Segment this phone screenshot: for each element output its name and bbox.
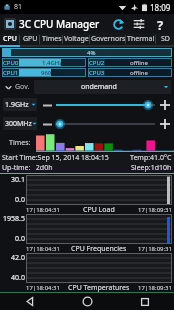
staticText: Voltage [64,34,89,44]
staticText: 17|18:09:31 [138,245,172,253]
button[interactable]: 300MHz [3,117,37,130]
button[interactable]: CPU1 [2,68,86,77]
button[interactable]: Frequency slider [56,116,155,132]
staticText: 4% [87,49,96,57]
staticText: 1.9GHz [5,100,29,110]
button[interactable] [26,214,172,244]
staticText: 42.0 [11,253,25,263]
staticText: Times: [9,138,31,148]
button[interactable]: CPU3 [88,68,172,77]
staticText: Temp:41.0°C [130,153,172,163]
staticText: 0.0 [15,195,25,205]
staticText: CPU3 [89,69,105,77]
button[interactable]: GPU [20,33,40,45]
staticText: 0.0 [15,234,25,244]
button[interactable] [26,175,172,205]
staticText: ? [157,16,164,32]
staticText: Gov. [15,82,30,92]
button[interactable]: Decrease [41,118,53,130]
staticText: SD [161,34,170,44]
staticText: Start Time:Sep 15, 2014 18:04:15 [2,153,109,163]
button[interactable]: Help [152,16,168,32]
staticText: 17|18:04:31 [26,284,60,292]
button[interactable] [36,133,174,153]
staticText: GPU [23,34,38,44]
staticText: CPU1 [3,69,19,77]
staticText: Governors [91,34,126,44]
staticText: CPU0 [3,59,19,67]
button[interactable]: Frequency slider [56,97,155,113]
button[interactable]: Refresh [110,16,126,32]
staticText: 40.0 [11,273,25,283]
button[interactable]: Thermal [126,33,156,45]
button[interactable]: Back [0,293,58,310]
button[interactable]: Increase [158,98,171,111]
button[interactable] [26,253,172,283]
staticText: offline [130,59,148,67]
staticText: 17|18:09:31 [138,284,172,292]
staticText: CPU Load [83,205,115,214]
button[interactable]: Governors [90,33,126,45]
button[interactable]: Decrease [41,99,53,111]
staticText: Times [42,34,62,44]
button[interactable]: CPU0 [2,58,86,67]
staticText: 17|18:04:31 [26,245,60,253]
staticText: offline [130,69,148,77]
staticText: Thermal [127,34,155,44]
staticText: Up-time: 2d0h [2,163,53,173]
staticText: 300MHz [5,119,32,129]
button[interactable]: Home [58,293,116,310]
button[interactable]: Increase [158,117,171,130]
staticText: 18:09 [150,2,171,13]
staticText: CPU Temperatures [68,283,130,292]
staticText: ondemand [81,82,117,92]
button[interactable]: Settings [131,16,147,32]
staticText: 960MHz [41,69,65,77]
button[interactable]: 1.9GHz [3,98,37,111]
staticText: 3C CPU Manager [19,17,100,31]
button[interactable]: Recents [116,293,174,310]
staticText: 1958.5 [3,214,25,224]
staticText: 17|18:09:31 [138,206,172,214]
staticText: 81 [14,2,23,12]
staticText: 30.1 [11,175,25,185]
button[interactable]: SD [156,33,174,45]
button[interactable]: CPU [0,33,20,45]
staticText: CPU [3,34,17,44]
button[interactable]: Times [40,33,63,45]
button[interactable]: CPU2 [88,58,172,67]
button[interactable]: Voltage [63,33,90,45]
staticText: 1.4GHz [42,59,63,67]
staticText: CPU Frequencies [71,244,127,253]
button[interactable]: Expand [3,80,13,94]
staticText: CPU2 [89,59,105,67]
staticText: Sleep:1d10h [131,163,172,173]
staticText: 17|18:04:31 [26,206,60,214]
button[interactable]: ondemand [34,80,171,94]
